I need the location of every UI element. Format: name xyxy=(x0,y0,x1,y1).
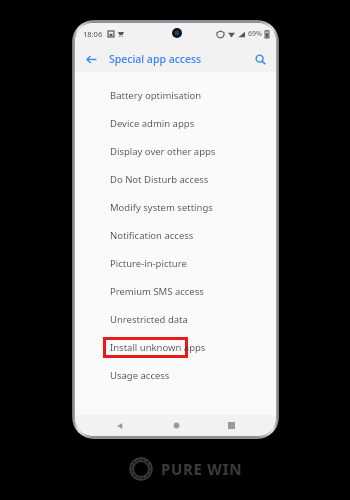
button[interactable]: Install unknown apps xyxy=(75,333,276,361)
button[interactable]: Display over other apps xyxy=(75,137,276,165)
staticText: Premium SMS access xyxy=(110,285,204,298)
button[interactable]: Premium SMS access xyxy=(75,277,276,305)
staticText: 69% xyxy=(248,29,262,39)
button[interactable]: Notification access xyxy=(75,221,276,249)
staticText: Special app access xyxy=(109,52,202,66)
button[interactable]: Back xyxy=(81,49,101,69)
button[interactable]: Do Not Disturb access xyxy=(75,165,276,193)
staticText: Modify system settings xyxy=(110,201,213,214)
button[interactable]: Picture-in-picture xyxy=(75,249,276,277)
staticText: Install unknown apps xyxy=(110,341,206,354)
button[interactable]: Modify system settings xyxy=(75,193,276,221)
staticText: 18:06 xyxy=(83,29,103,39)
button[interactable]: Back xyxy=(109,415,131,436)
staticText: Notification access xyxy=(110,229,194,242)
button[interactable]: Device admin apps xyxy=(75,109,276,137)
staticText: Do Not Disturb access xyxy=(110,173,209,186)
staticText: Display over other apps xyxy=(110,145,216,158)
button[interactable]: Unrestricted data xyxy=(75,305,276,333)
button[interactable]: Battery optimisation xyxy=(75,81,276,109)
button[interactable]: Recents xyxy=(220,415,242,436)
staticText: Device admin apps xyxy=(110,117,195,130)
button[interactable]: Usage access xyxy=(75,361,276,389)
staticText: Unrestricted data xyxy=(110,313,188,326)
staticText: Picture-in-picture xyxy=(110,257,187,270)
button[interactable]: Search xyxy=(250,49,270,69)
staticText: PURE WIN xyxy=(161,459,243,479)
button[interactable]: Home xyxy=(165,415,187,436)
staticText: Usage access xyxy=(110,369,170,382)
staticText: Battery optimisation xyxy=(110,89,202,102)
